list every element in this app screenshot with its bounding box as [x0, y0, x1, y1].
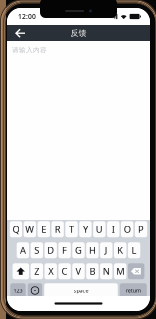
button[interactable]: Y: [79, 221, 92, 237]
button[interactable]: T: [65, 221, 78, 237]
button[interactable]: N: [100, 263, 112, 279]
button[interactable]: Back: [7, 25, 33, 41]
button[interactable]: R: [51, 221, 64, 237]
staticText: 请输入内容: [12, 46, 47, 54]
button[interactable]: W: [24, 221, 36, 237]
staticText: space: [73, 287, 88, 294]
staticText: I: [112, 223, 115, 235]
button[interactable]: U: [93, 221, 105, 237]
staticText: N: [103, 265, 110, 277]
button[interactable]: X: [44, 263, 57, 279]
staticText: Q: [12, 223, 19, 235]
button[interactable]: return: [120, 283, 147, 298]
staticText: Z: [34, 265, 39, 277]
button[interactable]: Emoji keyboard: [28, 283, 42, 298]
button[interactable]: B: [86, 263, 99, 279]
button[interactable]: P: [135, 221, 147, 237]
staticText: H: [89, 244, 96, 256]
staticText: L: [132, 244, 137, 256]
staticText: O: [124, 223, 131, 235]
staticText: P: [138, 223, 144, 235]
button[interactable]: E: [37, 221, 50, 237]
button[interactable]: M: [114, 263, 126, 279]
staticText: 12:00: [18, 12, 36, 21]
staticText: B: [89, 265, 95, 277]
staticText: 123: [13, 287, 22, 294]
staticText: S: [34, 244, 39, 256]
button[interactable]: A: [17, 242, 29, 258]
button[interactable]: F: [58, 242, 71, 258]
staticText: R: [55, 223, 61, 235]
staticText: G: [75, 244, 82, 256]
button[interactable]: C: [58, 263, 71, 279]
button[interactable]: Z: [31, 263, 43, 279]
staticText: Y: [83, 223, 88, 235]
button[interactable]: G: [72, 242, 85, 258]
button[interactable]: S: [31, 242, 43, 258]
staticText: W: [25, 223, 34, 235]
staticText: return: [126, 287, 141, 294]
button[interactable]: K: [114, 242, 126, 258]
button[interactable]: O: [121, 221, 133, 237]
staticText: M: [116, 265, 124, 277]
button[interactable]: L: [128, 242, 140, 258]
staticText: K: [117, 244, 123, 256]
button[interactable]: I: [107, 221, 119, 237]
staticText: J: [105, 244, 108, 256]
button[interactable]: space: [44, 283, 118, 298]
staticText: E: [41, 223, 46, 235]
staticText: U: [96, 223, 103, 235]
staticText: A: [20, 244, 26, 256]
button[interactable]: V: [72, 263, 85, 279]
staticText: 反馈: [70, 28, 86, 38]
button[interactable]: J: [100, 242, 112, 258]
button[interactable]: Shift: [13, 263, 29, 279]
staticText: C: [62, 265, 68, 277]
staticText: V: [75, 265, 81, 277]
button[interactable]: Delete: [128, 263, 144, 279]
staticText: F: [62, 244, 67, 256]
button[interactable]: H: [86, 242, 99, 258]
staticText: T: [69, 223, 74, 235]
button[interactable]: 123: [10, 283, 26, 298]
staticText: X: [48, 265, 53, 277]
button[interactable]: D: [44, 242, 57, 258]
button[interactable]: Q: [10, 221, 22, 237]
staticText: D: [47, 244, 54, 256]
